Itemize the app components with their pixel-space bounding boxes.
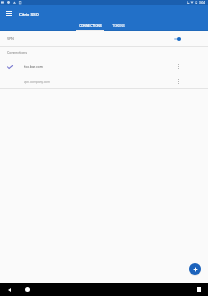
button[interactable]: More options	[175, 58, 181, 73]
staticText: Citrix SSO	[19, 12, 39, 17]
button[interactable]: VPN	[0, 31, 208, 46]
button[interactable]: TOKENS	[104, 21, 132, 31]
button[interactable]: CONNECTIONS	[76, 21, 104, 31]
staticText: CONNECTIONS	[79, 24, 102, 28]
button[interactable]: vpn.company.com	[0, 73, 208, 88]
button[interactable]: Back	[6, 287, 12, 293]
button[interactable]: Recent apps	[196, 286, 202, 292]
staticText: VPN	[7, 37, 14, 41]
button[interactable]: fox.bar.com	[0, 58, 208, 73]
staticText: Connections	[7, 51, 28, 55]
button[interactable]: Open navigation drawer	[3, 8, 14, 19]
button[interactable]: More options	[175, 73, 181, 88]
staticText: fox.bar.com	[24, 65, 43, 69]
staticText: TOKENS	[112, 24, 125, 28]
staticText: 3:04	[199, 1, 206, 5]
staticText: vpn.company.com	[24, 80, 50, 84]
button[interactable]: Home	[24, 286, 30, 292]
button[interactable]: Add connection	[189, 263, 201, 275]
